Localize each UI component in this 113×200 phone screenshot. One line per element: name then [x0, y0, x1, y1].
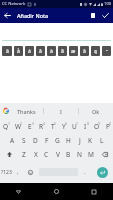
staticText: U [72, 122, 77, 131]
staticText: 2 [20, 121, 23, 126]
button[interactable]: L [96, 133, 107, 147]
button[interactable]: Z [18, 147, 30, 161]
staticText: 3 [32, 121, 35, 126]
staticText: . [84, 168, 86, 176]
button[interactable]: ą [91, 46, 100, 56]
staticText: S [22, 136, 26, 145]
button[interactable]: Thanks [9, 103, 43, 119]
button[interactable]: Back [0, 8, 15, 23]
staticText: I [84, 122, 87, 131]
button[interactable]: ª [102, 46, 111, 56]
staticText: 0 [109, 121, 112, 126]
button[interactable]: å [14, 46, 23, 56]
button[interactable]: ?123 [0, 161, 13, 183]
staticText: à [50, 48, 53, 55]
button[interactable]: Home [37, 183, 75, 200]
button[interactable]: ä [2, 46, 12, 56]
staticText: Y [62, 122, 66, 131]
staticText: B [66, 150, 71, 159]
button[interactable]: ā [80, 46, 89, 56]
staticText: H [66, 136, 71, 145]
staticText: ą [94, 48, 97, 55]
staticText: A [10, 136, 15, 145]
staticText: æ [71, 48, 76, 55]
staticText: á [28, 48, 31, 55]
button[interactable]: I [44, 103, 78, 119]
staticText: W [15, 122, 22, 131]
button[interactable]: J [74, 133, 85, 147]
button[interactable]: Ok [79, 103, 113, 119]
staticText: Añadir Nota [17, 12, 49, 19]
button[interactable]: G [52, 133, 63, 147]
button[interactable]: I [80, 119, 91, 133]
staticText: L [100, 136, 104, 145]
staticText: 100 [104, 1, 112, 7]
button[interactable]: W [12, 119, 24, 133]
button[interactable]: V [52, 147, 63, 161]
staticText: E [28, 122, 32, 131]
staticText: ã [61, 48, 64, 55]
button[interactable]: á [25, 46, 34, 56]
staticText: J [79, 136, 81, 145]
button[interactable]: O [91, 119, 102, 133]
staticText: 4 [43, 121, 46, 126]
staticText: K [88, 136, 93, 145]
button[interactable]: Back [0, 183, 37, 200]
button[interactable]: N [74, 147, 85, 161]
button[interactable]: Y [58, 119, 69, 133]
staticText: ?123 [1, 169, 12, 176]
staticText: D [33, 136, 38, 145]
staticText: G [55, 136, 60, 145]
staticText: â [39, 48, 42, 55]
button[interactable]: Save note [99, 9, 112, 22]
staticText: F [45, 136, 49, 145]
staticText: C [44, 150, 49, 159]
button[interactable]: Recents [75, 183, 113, 200]
staticText: ā [83, 48, 86, 55]
staticText: 5 [54, 121, 57, 126]
staticText: 1 [8, 121, 11, 126]
staticText: ä [6, 48, 9, 55]
button[interactable]: X [30, 147, 41, 161]
button[interactable]: E [24, 119, 36, 133]
staticText: O [94, 122, 100, 131]
button[interactable]: H [63, 133, 74, 147]
staticText: V [56, 150, 60, 159]
button[interactable]: Note color [86, 9, 99, 22]
button[interactable]: M [85, 147, 96, 161]
staticText: ª [106, 48, 108, 55]
button[interactable]: U [69, 119, 80, 133]
button[interactable]: S [18, 133, 30, 147]
staticText: 6 [65, 121, 68, 126]
button[interactable]: A [6, 133, 18, 147]
button[interactable]: F [41, 133, 52, 147]
button[interactable]: Shift [0, 147, 18, 161]
button[interactable]: C [41, 147, 52, 161]
staticText: I [60, 108, 62, 115]
button[interactable]: , [13, 161, 22, 183]
button[interactable]: T [47, 119, 58, 133]
button[interactable]: R [36, 119, 47, 133]
button[interactable]: B [63, 147, 74, 161]
button[interactable]: Enter [92, 161, 113, 183]
button[interactable]: K [85, 133, 96, 147]
button[interactable]: æ [69, 46, 78, 56]
staticText: 7 [76, 121, 79, 126]
button[interactable]: D [30, 133, 41, 147]
button[interactable]: P [102, 119, 113, 133]
button[interactable]: Q [0, 119, 12, 133]
staticText: CC Network [2, 1, 26, 7]
button[interactable]: ã [58, 46, 67, 56]
staticText: P [106, 122, 110, 131]
staticText: M [88, 150, 94, 159]
button[interactable]: Emoji [22, 161, 39, 183]
staticText: Z [22, 150, 26, 159]
staticText: 8 [87, 121, 90, 126]
staticText: T [51, 122, 55, 131]
staticText: R [39, 122, 44, 131]
button[interactable]: à [47, 46, 56, 56]
button[interactable]: â [36, 46, 45, 56]
button[interactable]: Backspace [96, 147, 113, 161]
